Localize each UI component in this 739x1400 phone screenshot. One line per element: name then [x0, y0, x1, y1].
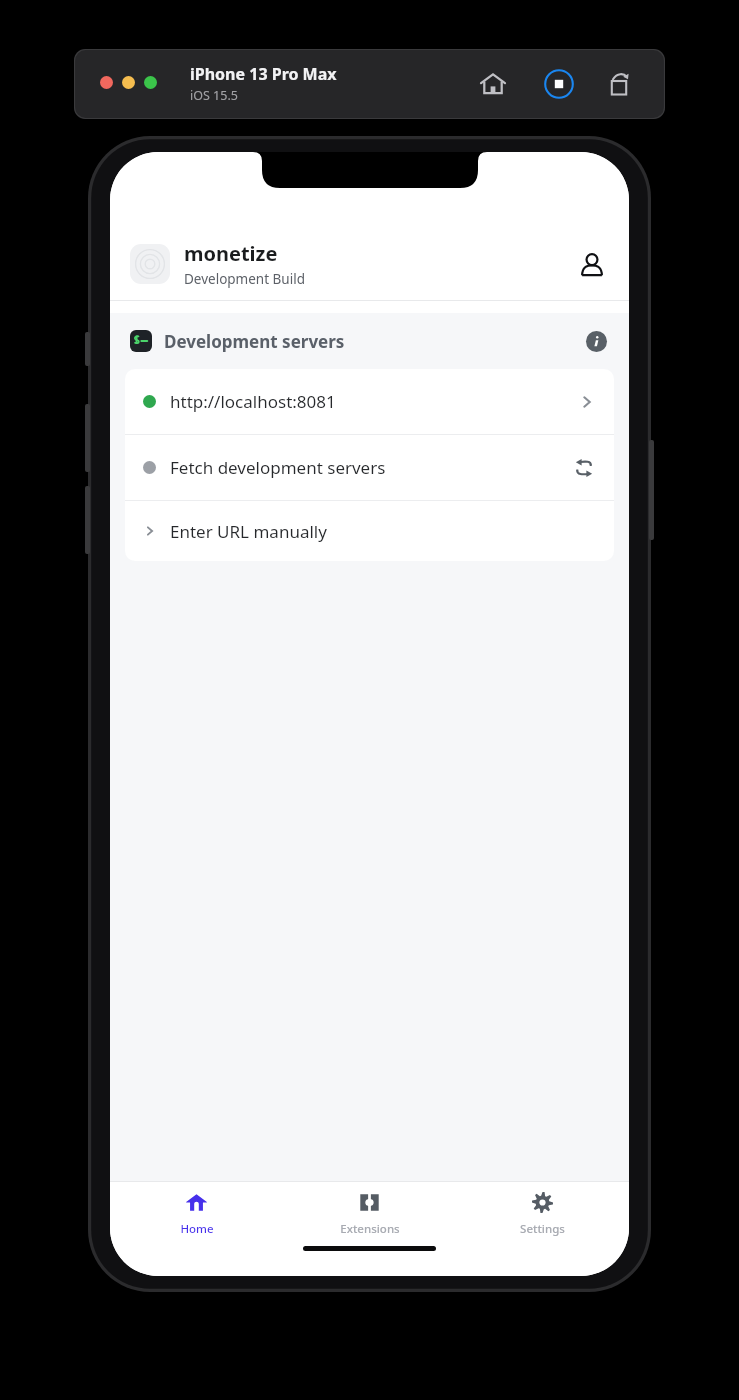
button[interactable]: Rotate: [604, 69, 634, 99]
button[interactable]: Account: [575, 247, 609, 281]
staticText: Enter URL manually: [170, 520, 327, 543]
staticText: Development Build: [184, 270, 305, 288]
button[interactable]: Record: [544, 69, 574, 99]
staticText: http://localhost:8081: [170, 390, 336, 413]
button[interactable]: Maximize: [144, 76, 157, 89]
button[interactable]: Settings: [456, 1182, 629, 1246]
button[interactable]: Fetch development servers: [125, 435, 614, 500]
staticText: monetize: [184, 240, 278, 267]
staticText: iPhone 13 Pro Max: [190, 63, 337, 85]
button[interactable]: Home: [478, 69, 508, 99]
button[interactable]: Minimize: [122, 76, 135, 89]
staticText: Development servers: [164, 330, 345, 353]
button[interactable]: Extensions: [283, 1182, 456, 1246]
staticText: Extensions: [340, 1221, 400, 1237]
staticText: iOS 15.5: [190, 87, 238, 104]
button[interactable]: Close: [100, 76, 113, 89]
button[interactable]: Enter URL manually: [125, 501, 614, 561]
button[interactable]: Information: [583, 328, 609, 354]
button[interactable]: Home: [110, 1182, 283, 1246]
button[interactable]: http://localhost:8081: [125, 369, 614, 434]
staticText: Settings: [520, 1221, 565, 1237]
staticText: Fetch development servers: [170, 456, 386, 479]
staticText: Home: [180, 1221, 214, 1237]
